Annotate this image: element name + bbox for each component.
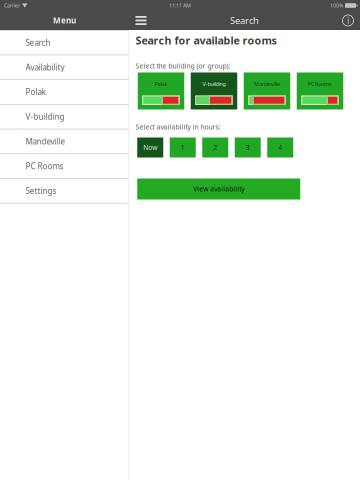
button[interactable]: 1 [170, 137, 196, 157]
staticText: Availability [26, 62, 65, 73]
staticText: 3 [246, 143, 250, 152]
button[interactable]: V-building [191, 72, 237, 109]
staticText: Select the building (or group): [136, 62, 231, 70]
button[interactable]: Polak [0, 80, 129, 105]
staticText: Mandeville [254, 80, 280, 87]
button[interactable]: Menu [129, 11, 153, 30]
button[interactable]: Settings [0, 179, 129, 203]
button[interactable]: Polak [138, 72, 184, 109]
button[interactable]: 3 [235, 137, 261, 157]
staticText: V-building [202, 80, 225, 87]
staticText: Carrier [4, 2, 20, 9]
staticText: i [347, 14, 349, 26]
button[interactable]: 2 [202, 137, 228, 157]
staticText: 4 [278, 143, 282, 152]
button[interactable]: Info [336, 11, 360, 30]
staticText: Settings [26, 185, 57, 196]
staticText: V-building [26, 111, 65, 122]
staticText: Polak [26, 87, 46, 97]
button[interactable]: Mandeville [0, 129, 129, 154]
button[interactable]: PC Rooms [0, 154, 129, 179]
staticText: PC Rooms [26, 161, 64, 171]
button[interactable]: Search [0, 30, 129, 55]
staticText: 11:11 AM [169, 2, 191, 9]
button[interactable]: 4 [267, 137, 293, 157]
staticText: Search [230, 14, 259, 27]
staticText: Search for available rooms [136, 33, 277, 47]
button[interactable]: Availability [0, 55, 129, 80]
staticText: Select availability in hours: [136, 123, 221, 131]
button[interactable]: View availability [137, 178, 300, 199]
staticText: Mandeville [26, 136, 66, 147]
button[interactable]: PC Rooms [297, 72, 343, 109]
staticText: Polak [154, 80, 167, 87]
button[interactable]: Mandeville [244, 72, 290, 109]
button[interactable]: V-building [0, 105, 129, 129]
staticText: View availability [193, 185, 244, 193]
staticText: Search [26, 37, 51, 48]
staticText: Menu [53, 15, 76, 26]
staticText: PC Rooms [308, 80, 332, 87]
staticText: 1 [181, 143, 185, 152]
staticText: Now [143, 143, 157, 152]
staticText: 100% [330, 2, 343, 9]
button[interactable]: Now [137, 137, 163, 157]
staticText: 2 [213, 143, 217, 152]
